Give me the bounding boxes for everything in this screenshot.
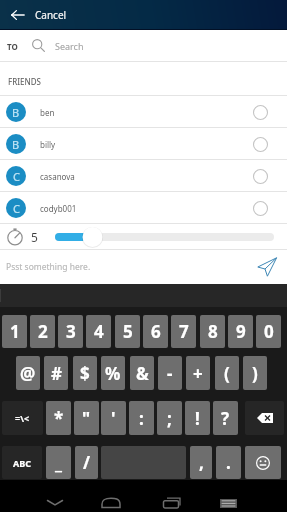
button[interactable]: " — [74, 401, 99, 435]
button[interactable]: - — [158, 356, 182, 390]
button[interactable]: Back — [7, 4, 29, 26]
staticText: 9 — [236, 320, 246, 343]
button[interactable]: Back — [41, 490, 69, 512]
staticText: ben — [40, 107, 55, 118]
button[interactable]: =\< — [2, 401, 43, 435]
staticText: ABC — [13, 457, 31, 469]
button[interactable]: ; — [157, 401, 182, 435]
button[interactable]: 6 — [143, 315, 168, 348]
staticText: ) — [252, 362, 258, 385]
button[interactable]: Recents — [160, 490, 184, 512]
button[interactable]: 8 — [200, 315, 225, 348]
button[interactable]: ) — [243, 356, 267, 390]
staticText: TO — [7, 41, 18, 52]
staticText: ? — [221, 407, 230, 430]
staticText: ! — [195, 407, 200, 430]
staticText: . — [226, 451, 231, 474]
button[interactable]: Duration — [46, 224, 287, 250]
button[interactable]: C — [0, 160, 287, 192]
button[interactable]: @ — [16, 356, 40, 390]
staticText: B — [12, 105, 20, 120]
button[interactable]: * — [46, 401, 71, 435]
button[interactable]: Home — [99, 490, 123, 512]
staticText: % — [105, 362, 121, 385]
staticText: * — [54, 407, 64, 430]
staticText: 4 — [94, 320, 104, 343]
staticText: Search — [55, 40, 84, 52]
staticText: casanova — [40, 171, 75, 182]
button[interactable]: + — [186, 356, 210, 390]
button[interactable]: 7 — [171, 315, 196, 348]
button[interactable]: _ — [46, 446, 71, 479]
staticText: 1 — [10, 320, 20, 343]
button[interactable]: ? — [213, 401, 238, 435]
staticText: _ — [55, 451, 62, 474]
button[interactable]: Emoji — [245, 446, 281, 479]
staticText: , — [199, 451, 204, 474]
button[interactable]: & — [130, 356, 154, 390]
button[interactable]: 2 — [30, 315, 55, 348]
staticText: ' — [111, 407, 116, 430]
button[interactable]: B — [0, 128, 287, 160]
staticText: 5 — [123, 320, 133, 343]
button[interactable]: 4 — [86, 315, 111, 348]
button[interactable]: ! — [185, 401, 210, 435]
button[interactable]: ( — [215, 356, 239, 390]
staticText: : — [139, 407, 144, 430]
button[interactable]: . — [216, 446, 241, 479]
button[interactable]: % — [101, 356, 125, 390]
button[interactable]: # — [44, 356, 68, 390]
staticText: + — [193, 362, 203, 385]
button[interactable]: ABC — [2, 446, 42, 479]
staticText: C — [13, 201, 20, 216]
button[interactable]: 9 — [228, 315, 253, 348]
button[interactable]: 3 — [58, 315, 83, 348]
staticText: / — [83, 451, 91, 474]
button[interactable]: , — [190, 446, 212, 479]
staticText: $ — [80, 362, 90, 385]
staticText: billy — [40, 139, 56, 150]
staticText: FRIENDS — [8, 76, 42, 87]
staticText: 8 — [208, 320, 218, 343]
staticText: Cancel — [35, 8, 67, 22]
staticText: ; — [167, 407, 172, 430]
button[interactable]: B — [0, 96, 287, 128]
staticText: 3 — [66, 320, 76, 343]
button[interactable]: Backspace — [245, 401, 284, 435]
other: Emoji — [256, 456, 270, 470]
button[interactable]: 1 — [2, 315, 27, 348]
button[interactable]: : — [129, 401, 154, 435]
staticText: ( — [224, 362, 230, 385]
staticText: " — [82, 407, 91, 430]
staticText: 5 — [31, 229, 38, 245]
button[interactable]: 0 — [256, 315, 281, 348]
button[interactable]: 5 — [115, 315, 140, 348]
staticText: Psst something here. — [6, 261, 91, 273]
button[interactable]: ' — [101, 401, 126, 435]
staticText: codyb001 — [40, 203, 77, 214]
staticText: 7 — [179, 320, 189, 343]
staticText: 2 — [38, 320, 48, 343]
staticText: C — [13, 169, 20, 184]
staticText: @ — [20, 362, 36, 385]
staticText: - — [167, 362, 173, 385]
button[interactable]: $ — [73, 356, 97, 390]
staticText: B — [12, 137, 20, 152]
staticText: 6 — [151, 320, 161, 343]
other: Backspace — [257, 410, 273, 426]
staticText: & — [136, 362, 149, 385]
button[interactable]: Send — [255, 255, 279, 279]
staticText: =\< — [15, 412, 30, 424]
button[interactable]: Switch keyboard — [215, 490, 241, 512]
button[interactable]: C — [0, 192, 287, 224]
button[interactable]: / — [75, 446, 98, 479]
staticText: # — [51, 362, 62, 385]
staticText: 0 — [264, 320, 274, 343]
button[interactable]: Timer — [6, 224, 24, 250]
